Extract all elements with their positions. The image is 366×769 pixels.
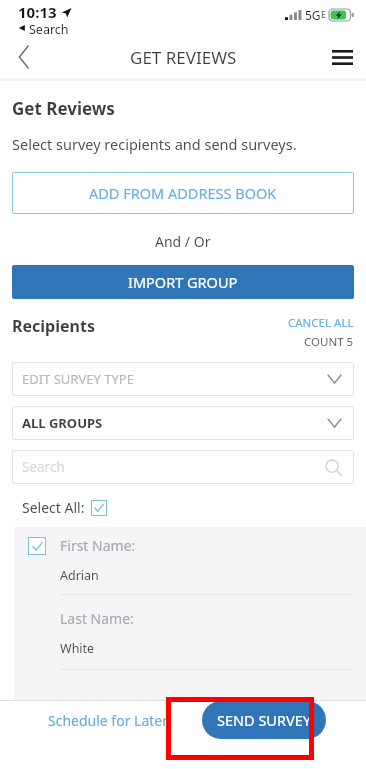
staticText: And / Or [155, 232, 211, 251]
staticText: Recipients [12, 315, 95, 337]
staticText: Search [22, 458, 65, 476]
staticText: Get Reviews [12, 97, 115, 120]
staticText: EDIT SURVEY TYPE [22, 370, 134, 388]
staticText: SEND SURVEY [217, 710, 311, 730]
staticText: GET REVIEWS [130, 46, 237, 69]
staticText: Select All: [22, 498, 85, 517]
button[interactable]: Checkbox [91, 500, 107, 516]
button[interactable]: Search [12, 450, 354, 484]
button[interactable]: ALL GROUPS [12, 406, 354, 440]
staticText: ADD FROM ADDRESS BOOK [89, 183, 277, 203]
button[interactable]: CANCEL ALL [288, 315, 354, 331]
staticText: Select survey recipients and send survey… [12, 134, 297, 154]
staticText: E [321, 9, 326, 21]
staticText: ALL GROUPS [22, 414, 103, 432]
button[interactable]: Select All: [22, 498, 107, 517]
button[interactable]: Checkbox [28, 537, 46, 555]
staticText: Adrian [60, 567, 99, 584]
staticText: COUNT 5 [304, 334, 354, 350]
staticText: IMPORT GROUP [128, 272, 238, 292]
staticText: 10:13 [18, 2, 57, 22]
button[interactable]: EDIT SURVEY TYPE [12, 362, 354, 396]
button[interactable]: Schedule for Later [40, 703, 176, 738]
staticText: First Name: [60, 536, 136, 555]
button[interactable]: IMPORT GROUP [12, 265, 354, 299]
staticText: 5G [305, 7, 321, 23]
button[interactable]: Back [0, 36, 48, 78]
staticText: Schedule for Later [48, 711, 168, 730]
staticText: Search [29, 21, 69, 35]
staticText: White [60, 640, 95, 657]
button[interactable]: Menu [318, 36, 366, 78]
staticText: CANCEL ALL [288, 315, 354, 331]
button[interactable]: ADD FROM ADDRESS BOOK [12, 172, 354, 214]
staticText: Last Name: [60, 609, 134, 628]
button[interactable]: SEND SURVEY [202, 701, 326, 739]
